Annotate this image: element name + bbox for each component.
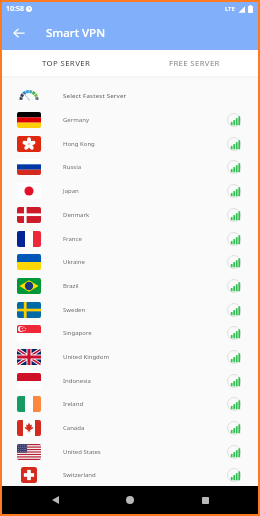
staticText: LTE — [225, 5, 235, 13]
staticText: Singapore — [63, 329, 92, 337]
button[interactable]: Back — [6, 20, 32, 46]
button[interactable]: Brazil — [2, 274, 258, 298]
staticText: 10:58 — [6, 4, 24, 14]
button[interactable]: FREE SERVER — [130, 50, 258, 76]
button[interactable]: Back — [44, 489, 66, 511]
staticText: Indonesia — [63, 377, 91, 385]
staticText: Smart VPN — [46, 25, 106, 41]
button[interactable]: Hong Kong — [2, 132, 258, 156]
staticText: Japan — [63, 187, 79, 195]
button[interactable]: France — [2, 227, 258, 251]
staticText: Denmark — [63, 211, 90, 219]
button[interactable]: Recent apps — [194, 489, 216, 511]
button[interactable]: Canada — [2, 416, 258, 440]
button[interactable]: Japan — [2, 179, 258, 203]
button[interactable]: Sweden — [2, 298, 258, 322]
staticText: Hong Kong — [63, 140, 95, 148]
button[interactable]: United States — [2, 440, 258, 464]
staticText: Ukraine — [63, 258, 85, 266]
staticText: Brazil — [63, 282, 79, 290]
staticText: Russia — [63, 163, 82, 171]
button[interactable]: Indonesia — [2, 369, 258, 393]
button[interactable]: Singapore — [2, 321, 258, 345]
staticText: Germany — [63, 116, 89, 124]
button[interactable]: Home — [119, 489, 141, 511]
button[interactable]: Denmark — [2, 203, 258, 227]
staticText: United States — [63, 448, 101, 456]
staticText: United Kingdom — [63, 353, 110, 361]
button[interactable]: Switzerland — [2, 463, 258, 487]
staticText: Sweden — [63, 306, 86, 314]
button[interactable]: Ireland — [2, 392, 258, 416]
staticText: TOP SERVER — [42, 58, 91, 69]
staticText: Ireland — [63, 400, 84, 408]
button[interactable]: Select Fastest Server — [2, 84, 258, 108]
staticText: Select Fastest Server — [63, 92, 127, 100]
staticText: FREE SERVER — [169, 58, 220, 69]
button[interactable]: Ukraine — [2, 250, 258, 274]
staticText: Switzerland — [63, 471, 96, 479]
button[interactable]: Germany — [2, 108, 258, 132]
staticText: Canada — [63, 424, 85, 432]
staticText: France — [63, 235, 82, 243]
button[interactable]: Russia — [2, 155, 258, 179]
button[interactable]: United Kingdom — [2, 345, 258, 369]
button[interactable]: TOP SERVER — [2, 50, 130, 76]
